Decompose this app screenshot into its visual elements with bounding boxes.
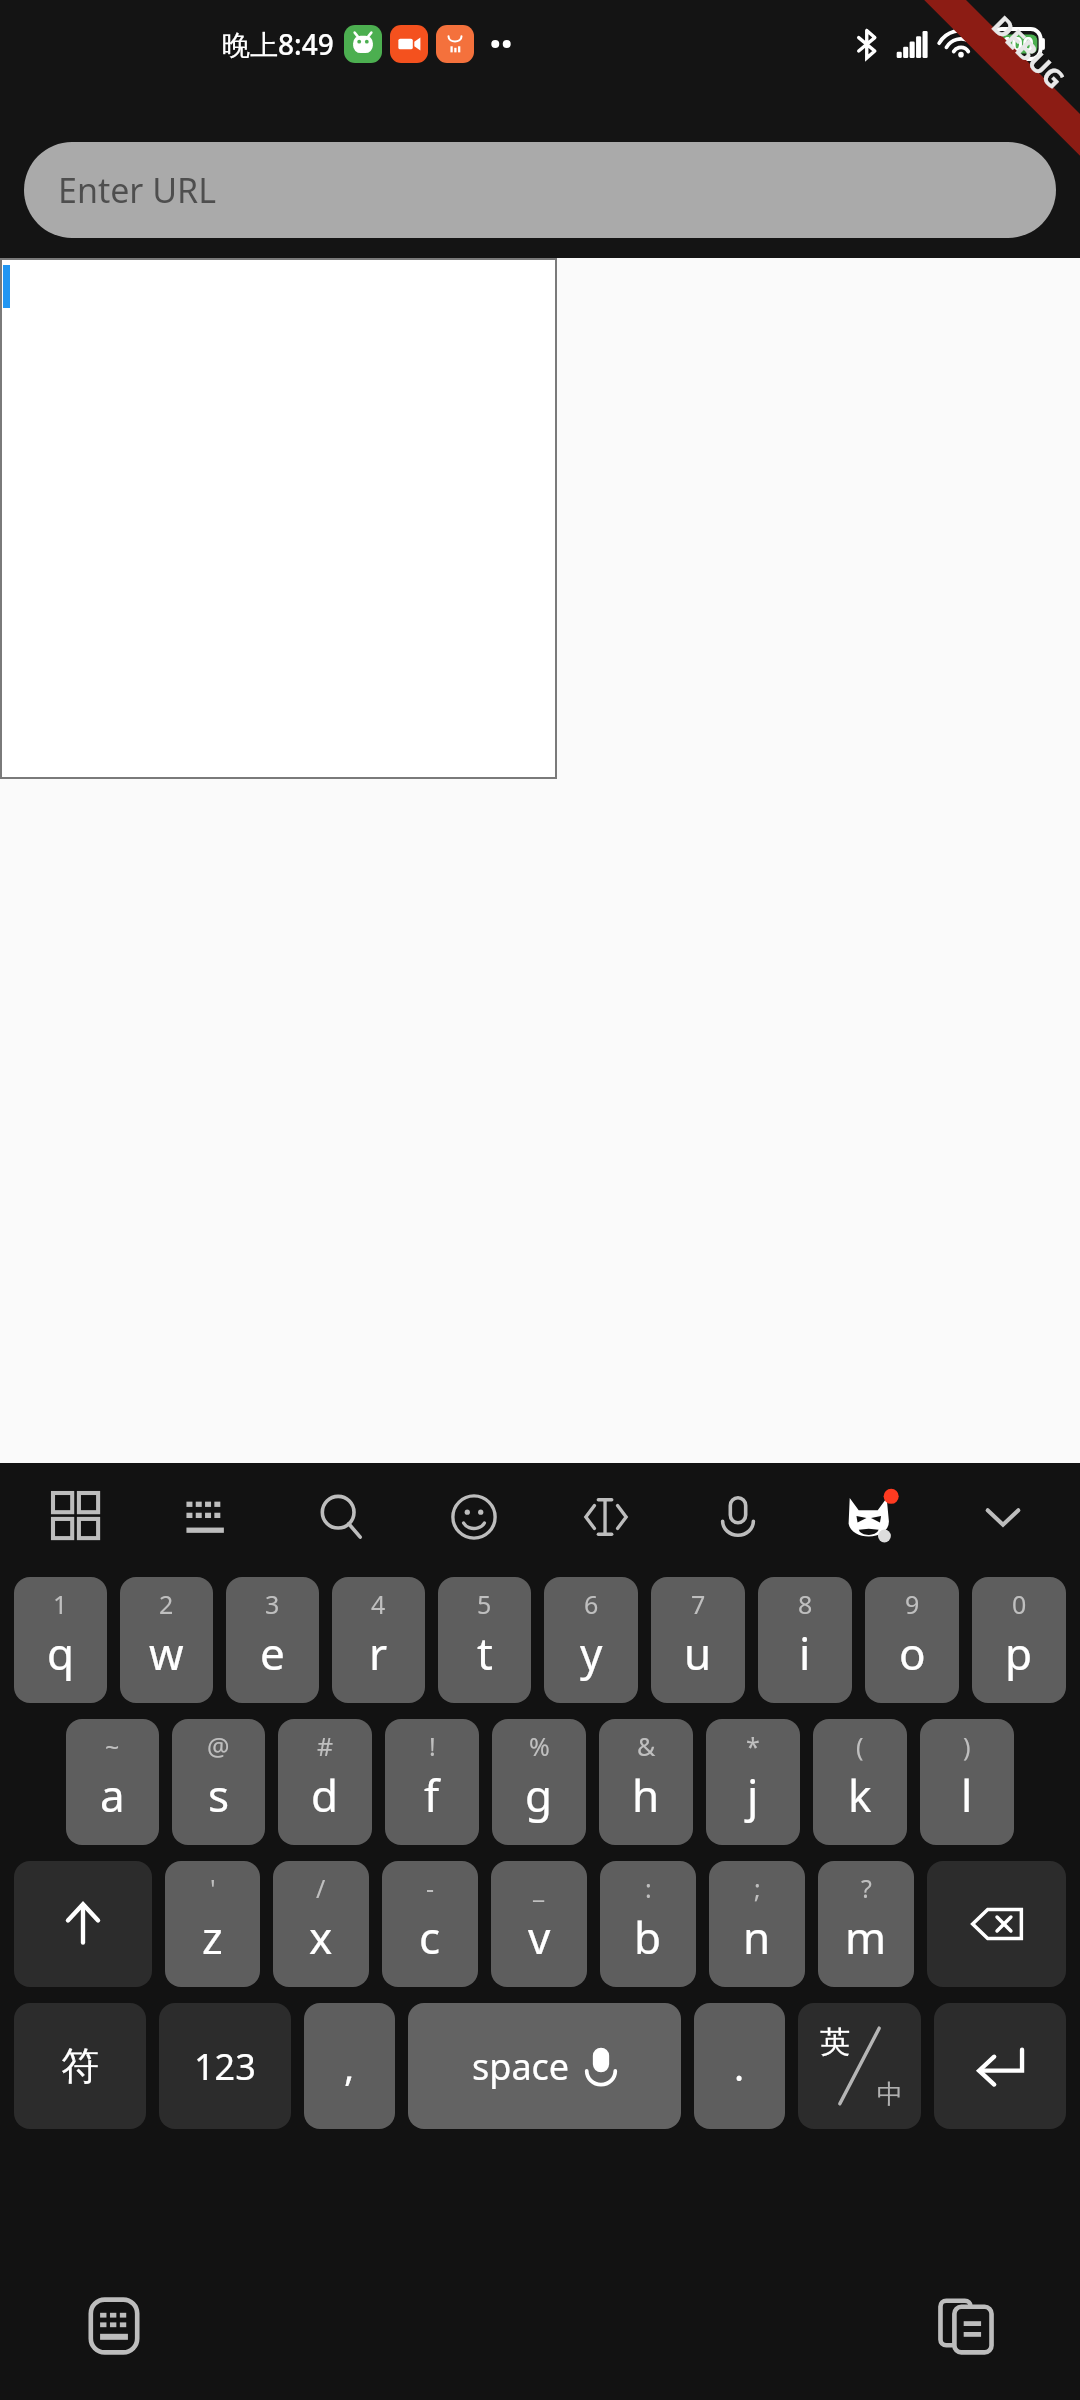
- staticText: v: [528, 1907, 551, 1967]
- button[interactable]: Apps: [46, 1486, 108, 1548]
- button[interactable]: Assistant: [840, 1486, 902, 1548]
- button[interactable]: Search: [311, 1486, 373, 1548]
- staticText: 晚上8:49: [222, 25, 334, 63]
- staticText: #: [317, 1729, 334, 1763]
- staticText: w: [149, 1623, 184, 1683]
- button[interactable]: Enter: [934, 2003, 1066, 2129]
- button[interactable]: Change keyboard: [78, 2290, 150, 2362]
- button[interactable]: Keyboard layout: [178, 1486, 240, 1548]
- button[interactable]: .: [694, 2003, 785, 2129]
- button[interactable]: ?: [818, 1861, 914, 1987]
- staticText: 3: [265, 1587, 280, 1621]
- button[interactable]: Move cursor: [575, 1486, 637, 1548]
- button[interactable]: 6: [544, 1577, 638, 1703]
- staticText: p: [1005, 1623, 1033, 1683]
- staticText: r: [369, 1623, 388, 1683]
- staticText: 4: [371, 1587, 386, 1621]
- button[interactable]: Emoji: [443, 1486, 505, 1548]
- button[interactable]: !: [385, 1719, 479, 1845]
- button[interactable]: Switch language: [798, 2003, 921, 2129]
- staticText: u: [684, 1623, 712, 1683]
- staticText: b: [634, 1907, 662, 1967]
- staticText: ): [963, 1729, 971, 1763]
- button[interactable]: 1: [14, 1577, 107, 1703]
- staticText: y: [580, 1623, 603, 1683]
- staticText: t: [477, 1623, 493, 1683]
- button[interactable]: ': [165, 1861, 260, 1987]
- button[interactable]: Voice input: [707, 1486, 769, 1548]
- staticText: n: [743, 1907, 771, 1967]
- staticText: 6: [584, 1587, 599, 1621]
- staticText: 100: [1001, 31, 1034, 57]
- button[interactable]: ): [920, 1719, 1014, 1845]
- staticText: 7: [691, 1587, 706, 1621]
- staticText: &: [637, 1729, 656, 1763]
- staticText: e: [260, 1623, 285, 1683]
- staticText: Enter URL: [58, 167, 217, 213]
- button[interactable]: -: [382, 1861, 478, 1987]
- staticText: (: [856, 1729, 864, 1763]
- button[interactable]: 5: [438, 1577, 531, 1703]
- staticText: q: [47, 1623, 75, 1683]
- button[interactable]: Enter URL: [24, 142, 1056, 238]
- button[interactable]: _: [491, 1861, 587, 1987]
- button[interactable]: Shift: [14, 1861, 152, 1987]
- staticText: DEBUG: [985, 7, 1073, 96]
- staticText: ?: [861, 1871, 872, 1905]
- staticText: %: [529, 1729, 550, 1763]
- staticText: o: [899, 1623, 926, 1683]
- button[interactable]: space: [408, 2003, 681, 2129]
- button[interactable]: 4: [332, 1577, 425, 1703]
- button[interactable]: :: [600, 1861, 696, 1987]
- staticText: space: [472, 2042, 570, 2091]
- staticText: 2: [159, 1587, 174, 1621]
- button[interactable]: Backspace: [927, 1861, 1066, 1987]
- button[interactable]: ,: [304, 2003, 395, 2129]
- button[interactable]: ~: [66, 1719, 159, 1845]
- staticText: z: [202, 1907, 223, 1967]
- button[interactable]: Clipboard: [930, 2290, 1002, 2362]
- staticText: ,: [344, 2040, 355, 2092]
- staticText: d: [311, 1765, 339, 1825]
- button[interactable]: ;: [709, 1861, 805, 1987]
- staticText: j: [747, 1765, 759, 1825]
- button[interactable]: 9: [865, 1577, 959, 1703]
- button[interactable]: 3: [226, 1577, 319, 1703]
- staticText: 0: [1012, 1587, 1027, 1621]
- button[interactable]: @: [172, 1719, 265, 1845]
- staticText: 符: [61, 2042, 99, 2090]
- button[interactable]: /: [273, 1861, 369, 1987]
- staticText: x: [309, 1907, 333, 1967]
- staticText: -: [426, 1871, 435, 1905]
- staticText: s: [208, 1765, 230, 1825]
- staticText: /: [316, 1871, 326, 1905]
- button[interactable]: 2: [120, 1577, 213, 1703]
- button[interactable]: 123: [159, 2003, 291, 2129]
- button[interactable]: %: [492, 1719, 586, 1845]
- staticText: ': [210, 1871, 216, 1905]
- staticText: 英: [820, 2023, 850, 2061]
- button[interactable]: &: [599, 1719, 693, 1845]
- staticText: ;: [754, 1871, 761, 1905]
- staticText: 中: [877, 2078, 903, 2111]
- staticText: .: [734, 2040, 745, 2092]
- staticText: l: [961, 1765, 973, 1825]
- button[interactable]: 7: [651, 1577, 745, 1703]
- staticText: 8: [798, 1587, 813, 1621]
- button[interactable]: 8: [758, 1577, 852, 1703]
- button[interactable]: 符: [14, 2003, 146, 2129]
- button[interactable]: *: [706, 1719, 800, 1845]
- staticText: i: [799, 1623, 811, 1683]
- staticText: !: [429, 1729, 436, 1763]
- staticText: @: [207, 1729, 230, 1763]
- staticText: 123: [194, 2042, 256, 2091]
- staticText: h: [632, 1765, 660, 1825]
- button[interactable]: (: [813, 1719, 907, 1845]
- button[interactable]: 0: [972, 1577, 1066, 1703]
- button[interactable]: Hide keyboard: [972, 1486, 1034, 1548]
- staticText: 5: [477, 1587, 492, 1621]
- staticText: k: [848, 1765, 872, 1825]
- staticText: a: [100, 1765, 125, 1825]
- button[interactable]: #: [278, 1719, 372, 1845]
- staticText: f: [424, 1765, 440, 1825]
